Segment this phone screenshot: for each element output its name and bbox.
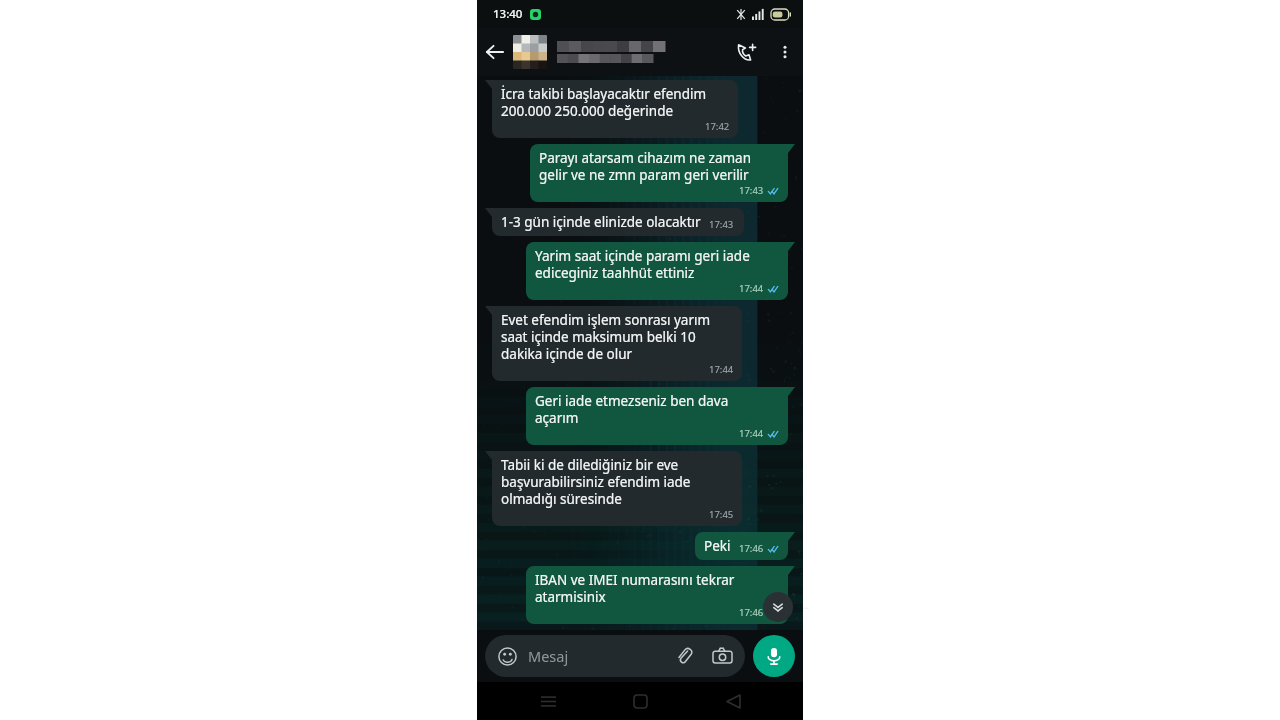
staticText: 17:46 xyxy=(739,606,764,619)
button[interactable]: Scroll to bottom xyxy=(763,592,793,622)
button[interactable]: Parayı atarsam cihazım ne zaman gelir ve… xyxy=(530,144,795,202)
button[interactable]: İcra takibi başlayacaktır efendim 200.00… xyxy=(485,80,738,138)
button[interactable]: Tabii ki de dilediğiniz bir eve başvurab… xyxy=(485,451,742,526)
staticText: İcra takibi başlayacaktır efendim 200.00… xyxy=(501,85,707,120)
staticText: IBAN ve IMEI numarasını tekrar atarmisin… xyxy=(535,571,735,606)
staticText: 17:42 xyxy=(705,120,730,133)
staticText: Yarim saat içinde paramı geri iade edice… xyxy=(535,247,750,282)
button[interactable]: Geri iade etmezseniz ben dava açarım xyxy=(526,387,795,445)
button[interactable]: Profile photo xyxy=(513,35,547,69)
button[interactable]: Peki xyxy=(695,532,795,560)
staticText: Peki xyxy=(704,537,731,555)
staticText: 17:44 xyxy=(739,427,764,440)
button[interactable]: Recent apps xyxy=(526,682,570,720)
staticText: 13:40 xyxy=(493,6,523,22)
button[interactable]: Emoji xyxy=(496,645,518,667)
button[interactable]: Video call xyxy=(727,32,767,72)
staticText: Mesaj xyxy=(528,646,569,666)
staticText: Tabii ki de dilediğiniz bir eve başvurab… xyxy=(501,456,691,508)
staticText: Geri iade etmezseniz ben dava açarım xyxy=(535,392,729,427)
button[interactable]: Emoji xyxy=(485,635,745,677)
button[interactable]: Evet efendim işlem sonrası yarım saat iç… xyxy=(485,306,742,381)
staticText: Evet efendim işlem sonrası yarım saat iç… xyxy=(501,311,711,363)
button[interactable]: More options xyxy=(767,34,803,70)
staticText: 17:44 xyxy=(739,282,764,295)
button[interactable]: Home xyxy=(618,682,662,720)
staticText: 17:43 xyxy=(709,218,734,231)
staticText: 1-3 gün içinde elinizde olacaktır xyxy=(501,213,701,231)
button[interactable]: IBAN ve IMEI numarasını tekrar atarmisin… xyxy=(526,566,795,624)
staticText: 17:46 xyxy=(739,542,764,555)
button[interactable]: Voice message xyxy=(753,635,795,677)
button[interactable]: Yarim saat içinde paramı geri iade edice… xyxy=(526,242,795,300)
button[interactable]: Camera xyxy=(710,644,734,668)
button[interactable]: Back xyxy=(477,34,513,70)
staticText: 17:45 xyxy=(709,508,734,521)
button[interactable]: Contact name xyxy=(557,41,727,63)
staticText: 17:44 xyxy=(709,363,734,376)
button[interactable]: Back xyxy=(711,682,755,720)
staticText: 17:43 xyxy=(739,184,764,197)
staticText: Parayı atarsam cihazım ne zaman gelir ve… xyxy=(539,149,752,184)
button[interactable]: Attach xyxy=(672,644,696,668)
button[interactable]: 1-3 gün içinde elinizde olacaktır xyxy=(485,208,744,236)
